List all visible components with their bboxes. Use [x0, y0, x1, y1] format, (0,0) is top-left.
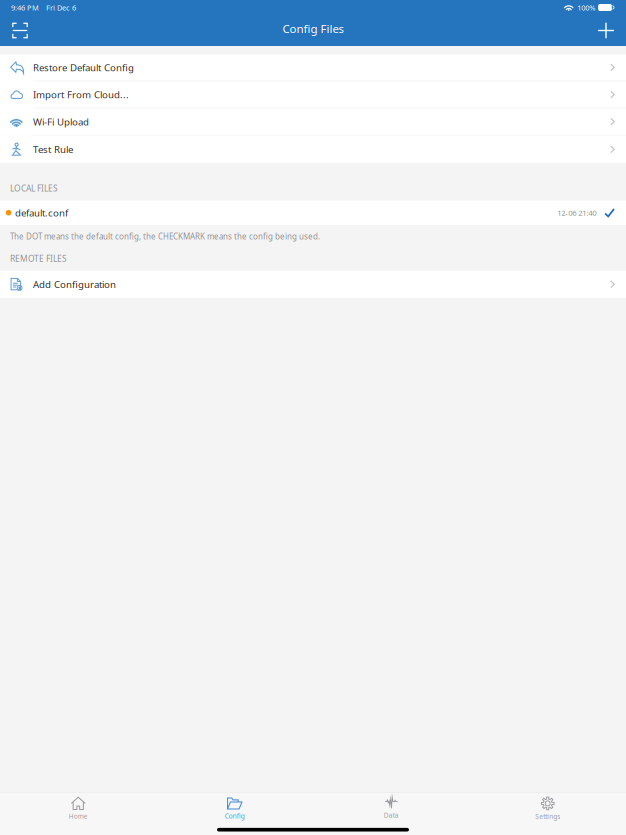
button[interactable]: Settings	[469, 793, 626, 824]
button[interactable]: Wi-Fi Upload	[0, 109, 626, 136]
staticText: Home	[69, 812, 88, 821]
staticText: REMOTE FILES	[10, 253, 67, 264]
button[interactable]: Add Configuration	[0, 271, 626, 298]
staticText: LOCAL FILES	[10, 182, 58, 194]
button[interactable]: Scan QR code	[4, 15, 36, 46]
button[interactable]: Import From Cloud...	[0, 82, 626, 109]
button[interactable]: Data	[313, 793, 469, 824]
staticText: Config	[225, 811, 245, 820]
staticText: 12-06 21:40	[557, 207, 596, 218]
button[interactable]: Home	[0, 793, 156, 824]
staticText: The DOT means the default config, the CH…	[10, 231, 320, 242]
staticText: Restore Default Config	[33, 61, 134, 74]
button[interactable]: Config	[156, 793, 313, 824]
button[interactable]: Restore Default Config	[0, 54, 626, 82]
button[interactable]: Test Rule	[0, 136, 626, 163]
staticText: Fri Dec 6	[46, 2, 76, 13]
staticText: Config Files	[282, 21, 343, 36]
button[interactable]: default.conf	[0, 200, 626, 225]
button[interactable]: Add configuration	[590, 15, 622, 46]
staticText: 100%	[577, 2, 595, 13]
staticText: Test Rule	[33, 143, 73, 156]
staticText: Wi-Fi Upload	[33, 115, 89, 128]
staticText: default.conf	[15, 206, 68, 219]
staticText: Settings	[535, 812, 560, 821]
staticText: Add Configuration	[33, 278, 116, 291]
staticText: Data	[384, 811, 399, 820]
staticText: 9:46 PM	[11, 2, 39, 13]
staticText: Import From Cloud...	[33, 88, 129, 101]
